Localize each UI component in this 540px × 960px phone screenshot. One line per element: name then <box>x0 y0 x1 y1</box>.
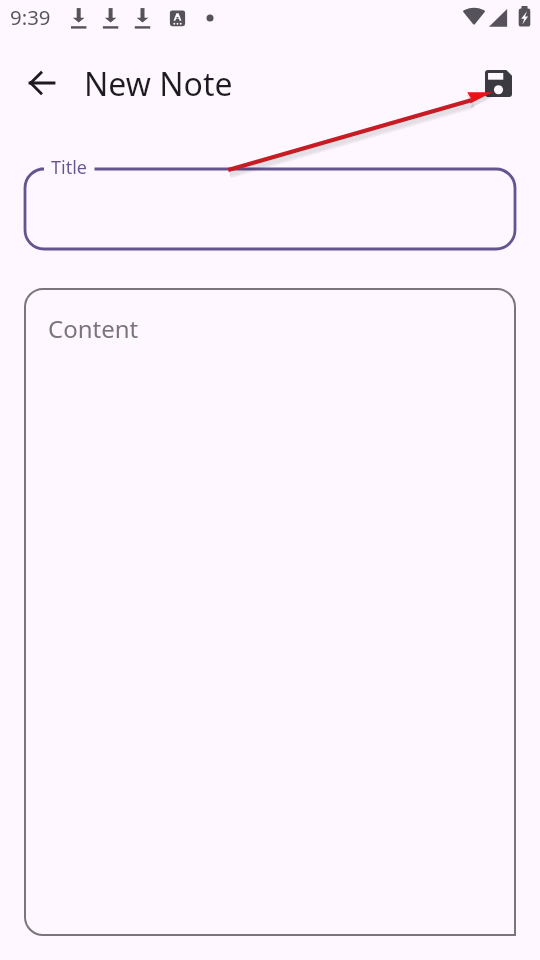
button[interactable]: Content <box>24 277 516 947</box>
staticText: New Note <box>84 62 233 106</box>
button[interactable]: Back <box>18 59 66 107</box>
staticText: Title <box>51 155 87 180</box>
button[interactable]: Save note <box>474 59 522 107</box>
staticText: Content <box>48 312 139 345</box>
staticText: 9:39 <box>10 3 51 31</box>
button[interactable]: Title <box>24 157 516 261</box>
